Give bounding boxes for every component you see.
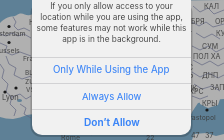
button[interactable]: Always Allow [32,83,191,109]
staticText: Don’t Allow [84,116,140,128]
staticText: sterdam [0,29,26,37]
staticText: ZÜ [25,78,35,86]
staticText: ПОЛ ХА [193,52,221,60]
staticText: БРЯ [191,17,205,25]
staticText: ОР [215,17,224,25]
staticText: КУ [216,29,224,37]
staticText: Only While Using the App [53,64,170,76]
staticText: 22 [146,133,155,140]
staticText: Lyon [2,93,19,102]
staticText: СУМ [202,42,219,50]
staticText: Fran [23,54,38,62]
staticText: If you only allow access to your locatio… [36,1,187,44]
button[interactable]: Only While Using the App [32,57,191,83]
staticText: ussels [0,46,20,54]
staticText: ИК [187,84,198,92]
staticText: С [188,63,194,71]
staticText: ДНП [202,71,219,79]
staticText: Always Allow [82,91,142,102]
staticText: КРЫ [202,99,218,107]
staticText: vastopol [188,113,216,121]
staticText: Rome [61,133,80,140]
staticText: H [29,18,35,27]
staticText: Г [188,30,193,38]
staticText: VS [26,86,35,94]
staticText: ЗАП [210,83,224,91]
staticText: Р [189,73,194,81]
staticText: 37 [205,131,214,139]
button[interactable]: Don’t Allow [32,109,191,135]
staticText: КАЛ [204,2,220,10]
staticText: BL [25,69,34,77]
staticText: ХРС [189,87,204,95]
staticText: 47 [191,131,200,139]
